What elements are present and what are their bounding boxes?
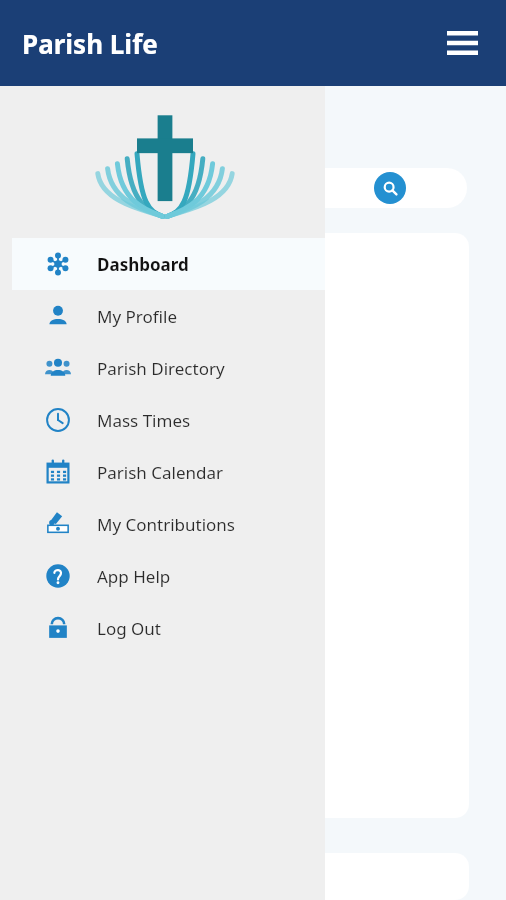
button[interactable]: My Contributions <box>0 498 325 550</box>
button[interactable]: Parish Calendar <box>0 446 325 498</box>
button[interactable]: App Help <box>0 550 325 602</box>
button[interactable]: Parish Directory <box>0 342 325 394</box>
staticText: My Profile <box>97 305 177 328</box>
staticText: Mass Times <box>97 409 191 432</box>
button[interactable] <box>20 853 469 900</box>
staticText: My Contributions <box>97 513 236 536</box>
button[interactable]: Open navigation menu <box>440 21 484 65</box>
staticText: Parish Directory <box>97 357 225 380</box>
button[interactable]: My Profile <box>0 290 325 342</box>
staticText: Log Out <box>97 617 161 640</box>
button[interactable] <box>20 233 469 818</box>
staticText: Parish Calendar <box>97 461 224 484</box>
staticText: Parish Life <box>22 26 158 61</box>
button[interactable]: Mass Times <box>0 394 325 446</box>
button[interactable]: Dashboard <box>12 238 325 290</box>
button[interactable]: Search <box>374 172 406 204</box>
staticText: Dashboard <box>97 253 189 276</box>
button[interactable]: Search <box>20 168 467 208</box>
staticText: App Help <box>97 565 171 588</box>
button[interactable]: Log Out <box>0 602 325 654</box>
